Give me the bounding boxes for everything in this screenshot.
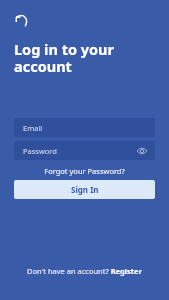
button[interactable]: Back xyxy=(11,9,33,31)
staticText: Password xyxy=(23,146,57,156)
button[interactable]: Sign In xyxy=(14,180,155,199)
button[interactable]: Email xyxy=(14,118,155,137)
staticText: Don't have an account? Register xyxy=(27,266,142,276)
staticText: Email xyxy=(23,123,43,133)
button[interactable]: Forgot your Password? xyxy=(40,165,129,177)
button[interactable]: Password xyxy=(14,141,155,160)
button[interactable]: Don't have an account? Register xyxy=(23,264,146,278)
staticText: Sign In xyxy=(71,184,99,195)
staticText: Log in to your account xyxy=(14,39,115,76)
staticText: Forgot your Password? xyxy=(44,166,125,176)
button[interactable]: Show password xyxy=(135,144,149,158)
